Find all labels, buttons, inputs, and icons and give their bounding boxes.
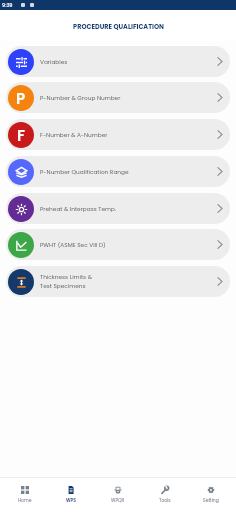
staticText: P <box>16 88 26 109</box>
staticText: Home <box>18 497 32 503</box>
staticText: WPS <box>66 497 77 503</box>
staticText: F <box>17 125 25 146</box>
staticText: PWHT (ASME Sec VIII D) <box>40 241 217 249</box>
staticText: Setting <box>203 497 219 503</box>
button[interactable]: Home <box>3 478 47 503</box>
staticText: Thickness Limits & Test Specimens <box>40 273 217 290</box>
staticText: Variables <box>40 58 217 66</box>
button[interactable]: P-Number Qualification Range <box>6 156 230 187</box>
button[interactable]: WPS <box>49 478 93 503</box>
button[interactable]: WPQR <box>96 478 140 503</box>
staticText: Tools <box>159 497 171 503</box>
button[interactable]: PWHT (ASME Sec VIII D) <box>6 229 230 260</box>
staticText: 9:39 <box>2 2 13 9</box>
staticText: Preheat & Interpass Temp. <box>40 205 217 213</box>
button[interactable]: Variables <box>6 46 230 77</box>
button[interactable]: Setting <box>189 478 233 503</box>
staticText: PROCEDURE QUALIFICATION <box>73 22 164 31</box>
button[interactable]: Thickness Limits & Test Specimens <box>6 266 230 297</box>
staticText: P-Number & Group Number <box>40 94 217 102</box>
button[interactable]: Tools <box>143 478 187 503</box>
staticText: P-Number Qualification Range <box>40 168 217 176</box>
button[interactable]: P <box>6 82 230 113</box>
button[interactable]: Preheat & Interpass Temp. <box>6 193 230 224</box>
staticText: WPQR <box>111 497 125 503</box>
staticText: F-Number & A-Number <box>40 131 217 139</box>
button[interactable]: F <box>6 119 230 150</box>
